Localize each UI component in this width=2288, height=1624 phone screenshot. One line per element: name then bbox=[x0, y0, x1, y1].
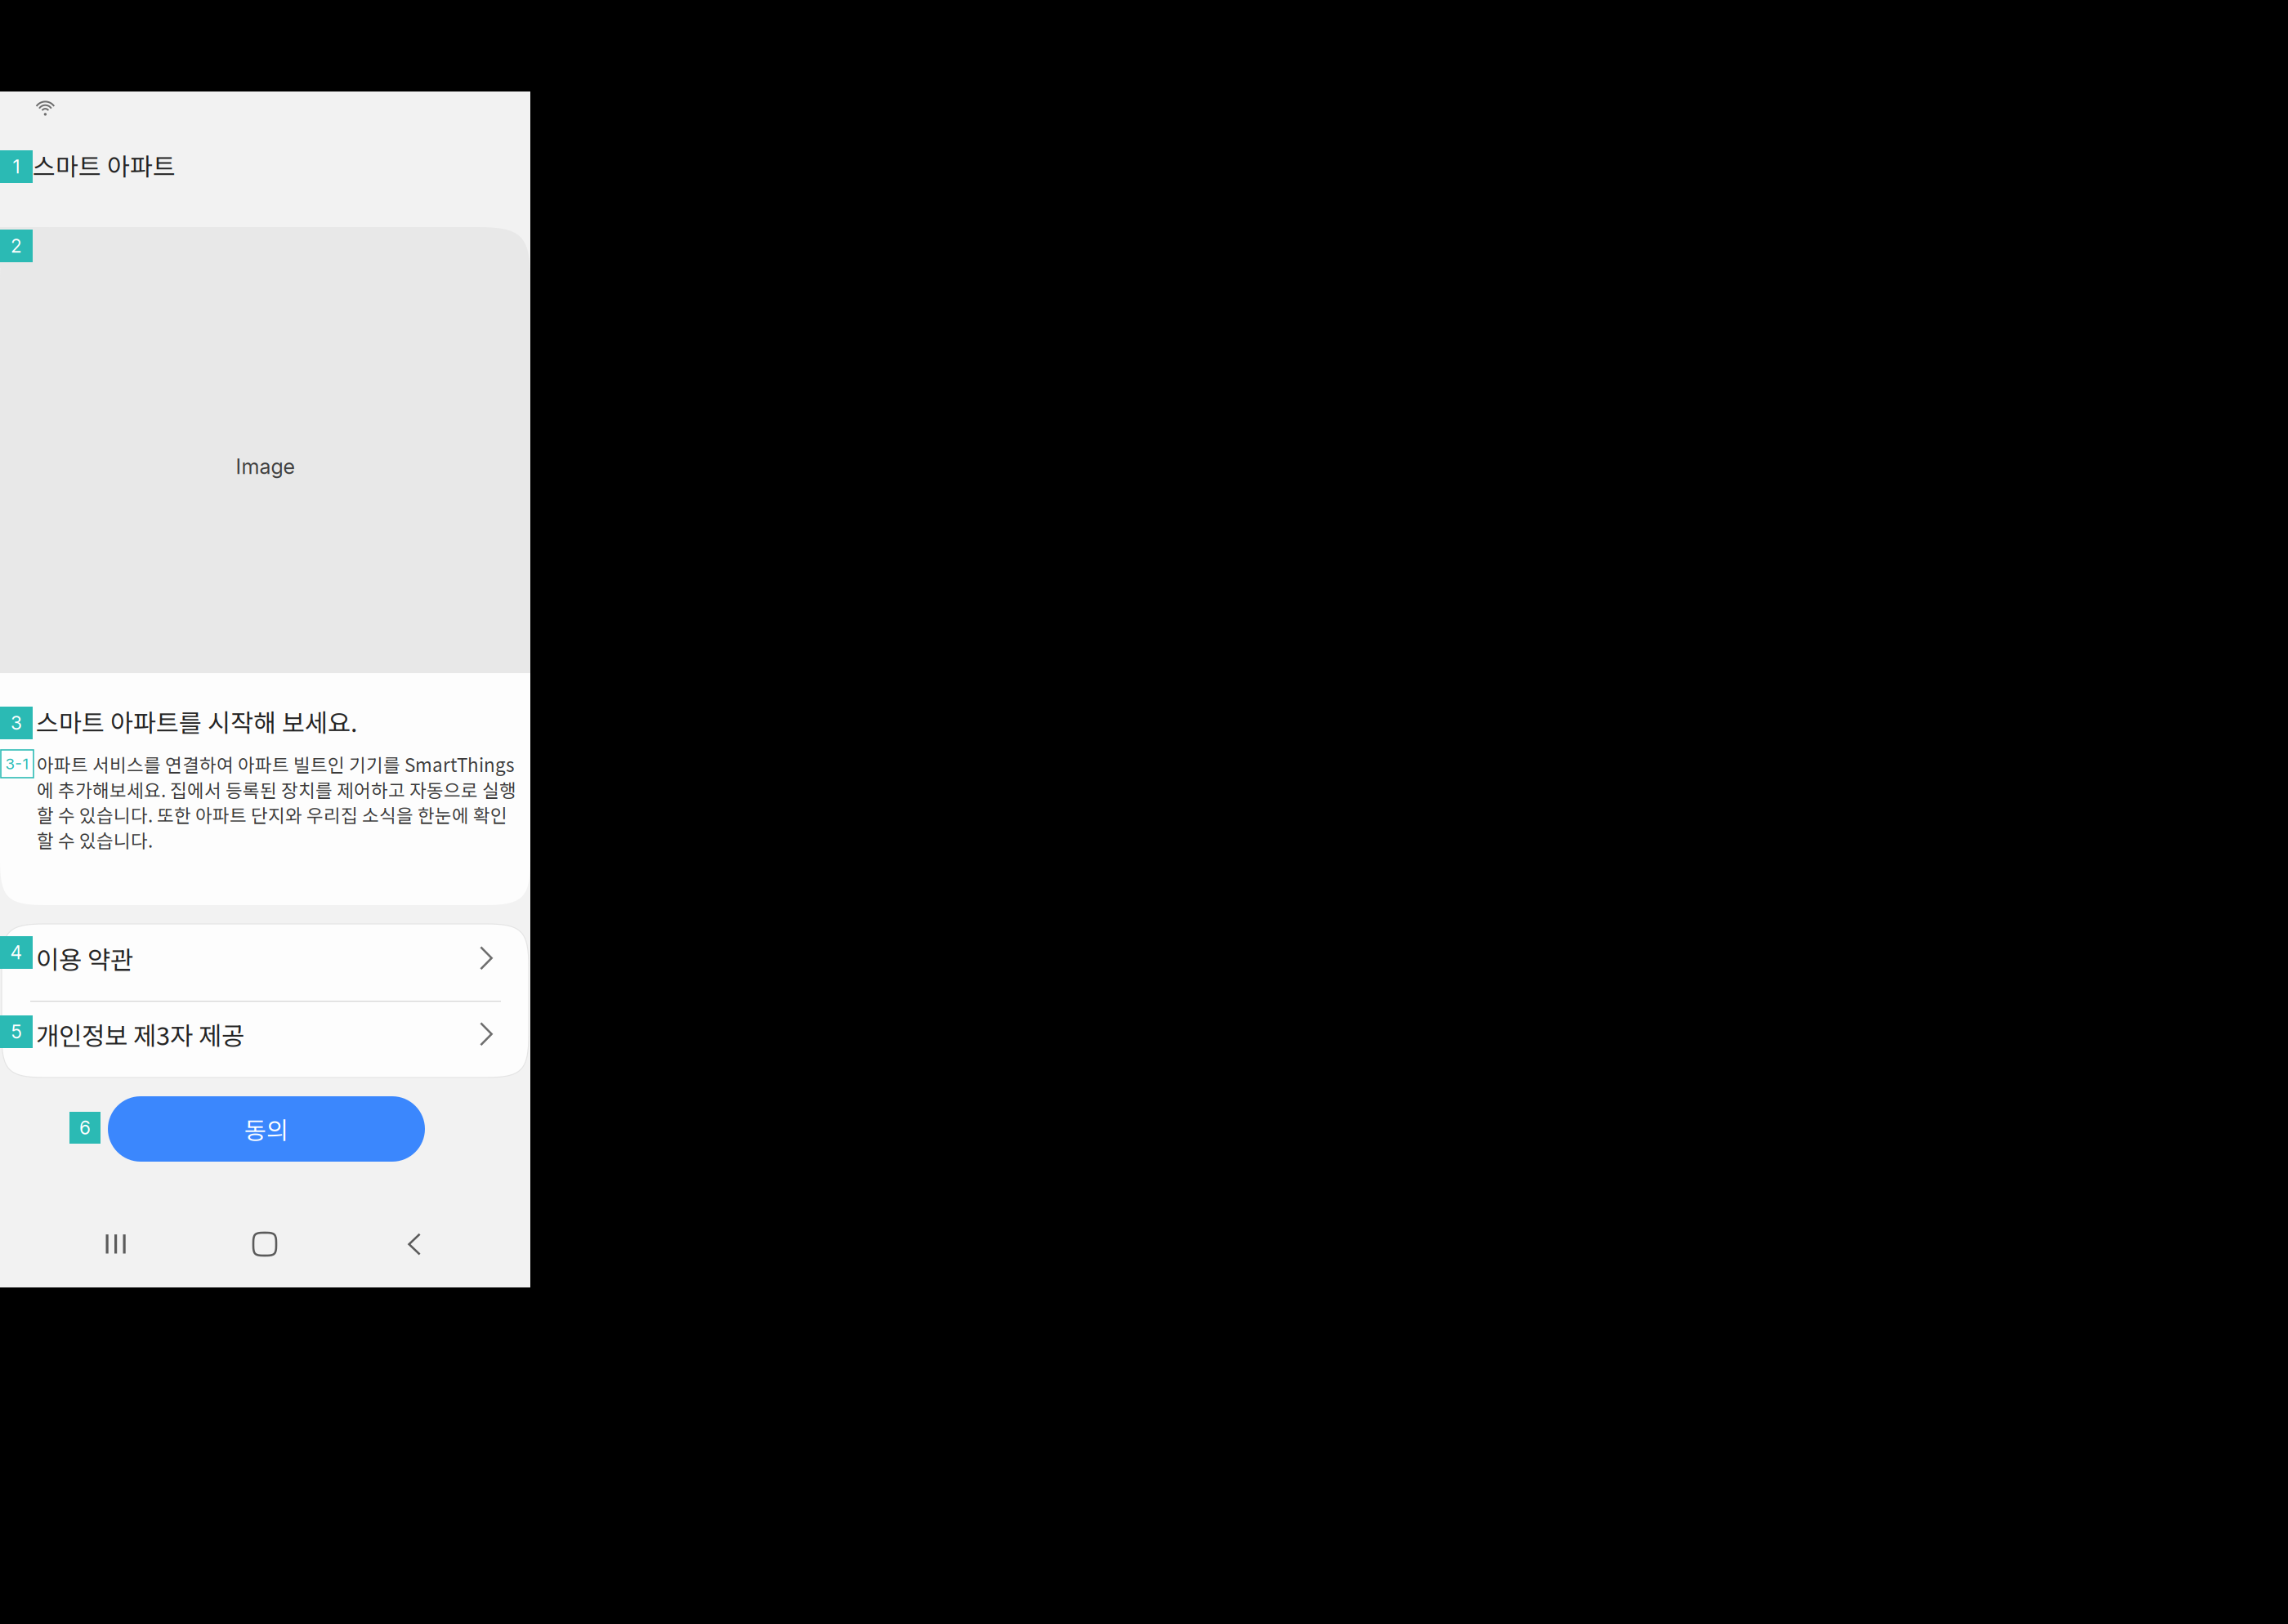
button[interactable]: 동의 bbox=[108, 1096, 425, 1162]
staticText: 3 bbox=[11, 712, 22, 734]
staticText: 6 bbox=[79, 1117, 91, 1139]
staticText: 개인정보 제3자 제공 bbox=[36, 1016, 244, 1052]
staticText: 4 bbox=[10, 941, 22, 964]
staticText: Image bbox=[236, 454, 295, 479]
staticText: 5 bbox=[11, 1021, 22, 1043]
button[interactable]: Back bbox=[377, 1214, 452, 1274]
staticText: 3-1 bbox=[5, 755, 29, 773]
staticText: 스마트 아파트 bbox=[33, 147, 176, 183]
staticText: 2 bbox=[11, 235, 22, 257]
button[interactable]: Recent apps bbox=[78, 1214, 154, 1274]
button[interactable]: 5 bbox=[0, 996, 530, 1073]
button[interactable]: Home bbox=[227, 1214, 302, 1274]
staticText: 1 bbox=[13, 155, 20, 178]
staticText: 아파트 서비스를 연결하여 아파트 빌트인 기기를 SmartThings 에 … bbox=[37, 751, 516, 853]
button[interactable]: 4 bbox=[0, 920, 530, 997]
staticText: 스마트 아파트를 시작해 보세요. bbox=[36, 703, 357, 739]
staticText: 동의 bbox=[244, 1112, 288, 1146]
staticText: 이용 약관 bbox=[36, 940, 133, 976]
